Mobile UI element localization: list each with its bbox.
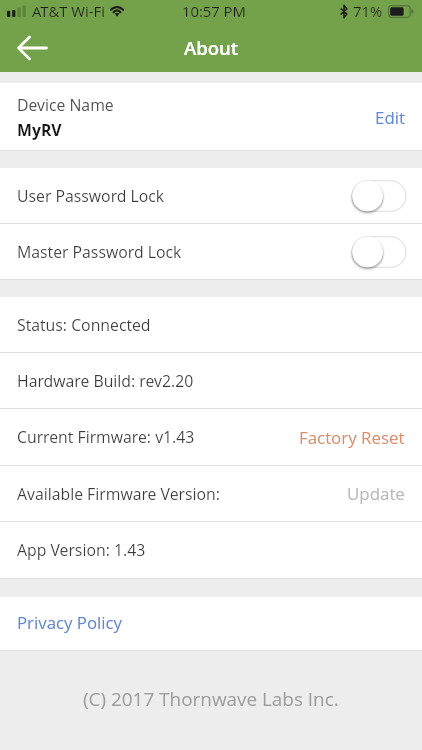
button[interactable]: Toggle password lock (351, 235, 407, 269)
staticText: MyRV (17, 119, 62, 141)
staticText: Update (347, 482, 405, 505)
button[interactable]: Back (0, 23, 50, 72)
staticText: Status: Connected (17, 314, 151, 336)
staticText: Hardware Build: rev2.20 (17, 370, 194, 392)
staticText: Master Password Lock (17, 241, 182, 263)
staticText: 10:57 PM (182, 1, 246, 21)
staticText: User Password Lock (17, 185, 165, 207)
staticText: App Version: 1.43 (17, 539, 146, 561)
staticText: AT&T Wi-Fi (32, 1, 105, 21)
staticText: Device Name (17, 94, 114, 116)
button[interactable]: Status: Connected (0, 297, 422, 352)
staticText: Edit (375, 106, 405, 129)
button[interactable]: Master Password Lock (0, 224, 422, 279)
staticText: (C) 2017 Thornwave Labs Inc. (83, 686, 339, 712)
button[interactable]: Current Firmware: v1.43 (0, 409, 422, 465)
button[interactable]: Hardware Build: rev2.20 (0, 353, 422, 408)
staticText: 71% (353, 1, 383, 21)
staticText: Factory Reset (299, 426, 405, 449)
button[interactable]: Privacy Policy (0, 597, 422, 650)
button[interactable]: Toggle password lock (351, 179, 407, 213)
button[interactable]: User Password Lock (0, 168, 422, 223)
staticText: Available Firmware Version: (17, 483, 220, 505)
button[interactable]: App Version: 1.43 (0, 522, 422, 578)
button[interactable]: Available Firmware Version: (0, 466, 422, 521)
staticText: Privacy Policy (17, 611, 123, 634)
staticText: Current Firmware: v1.43 (17, 426, 195, 448)
button[interactable]: Device Name (0, 83, 422, 150)
staticText: About (184, 35, 239, 60)
